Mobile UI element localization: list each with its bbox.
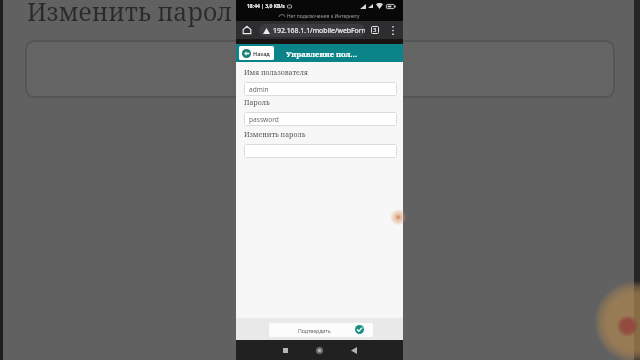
staticText: Управление пол... bbox=[286, 49, 358, 59]
button[interactable]: Tabs bbox=[368, 23, 382, 37]
staticText: 192.168.1.1/mobile/webForm bbox=[273, 26, 365, 35]
staticText: 3 bbox=[373, 26, 377, 34]
button[interactable]: 192.168.1.1/mobile/webForm bbox=[259, 24, 365, 37]
staticText: Назад bbox=[253, 50, 270, 57]
button[interactable]: Подтвердить bbox=[269, 323, 373, 337]
staticText: Имя пользователя bbox=[244, 68, 308, 77]
staticText: admin bbox=[249, 85, 269, 94]
staticText: Подтвердить bbox=[298, 327, 331, 334]
staticText: Изменить парол bbox=[27, 0, 233, 28]
button[interactable]: Home bbox=[239, 22, 255, 38]
staticText: 18:44 | 3,0 KB/s bbox=[247, 3, 285, 10]
staticText: password bbox=[249, 115, 279, 124]
button[interactable] bbox=[244, 144, 397, 158]
staticText: Пароль bbox=[244, 98, 270, 107]
staticText: Нет подключения к Интернету bbox=[287, 13, 360, 20]
button[interactable]: Home bbox=[309, 340, 329, 360]
button[interactable]: admin bbox=[244, 82, 397, 96]
staticText: Изменить пароль bbox=[244, 130, 306, 139]
button[interactable]: Назад bbox=[239, 46, 274, 60]
button[interactable]: Recents bbox=[275, 340, 295, 360]
button[interactable]: Back bbox=[344, 340, 364, 360]
button[interactable]: More options bbox=[386, 23, 400, 37]
button[interactable]: password bbox=[244, 112, 397, 126]
